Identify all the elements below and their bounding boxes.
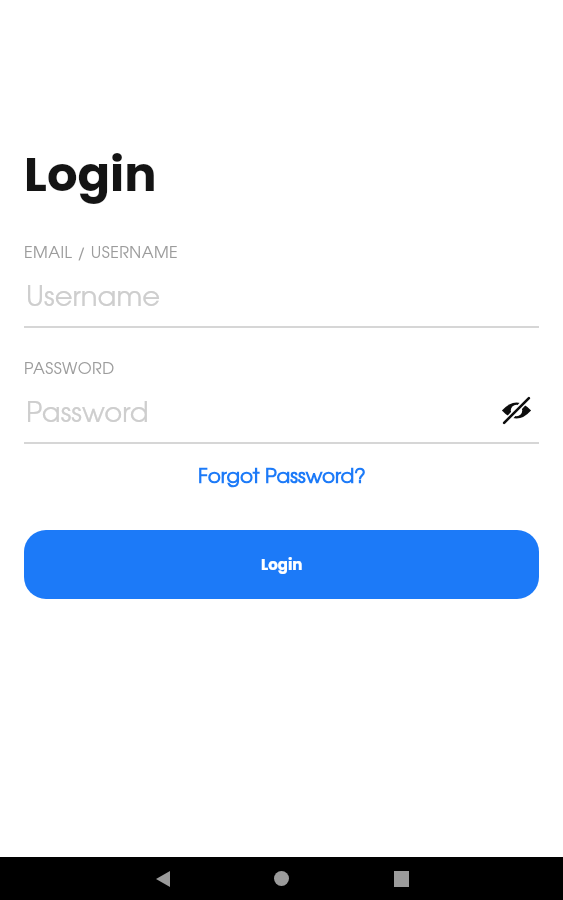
button[interactable]: Home	[260, 857, 303, 900]
button[interactable]: Login	[24, 530, 539, 599]
button[interactable]: Recent apps	[380, 857, 423, 900]
button[interactable]: Username	[24, 271, 539, 327]
button[interactable]: Forgot Password?	[190, 464, 374, 491]
button[interactable]: Back	[141, 857, 184, 900]
staticText: Login	[261, 554, 303, 575]
staticText: Password	[26, 402, 149, 428]
staticText: Username	[26, 286, 161, 312]
button[interactable]: Show password	[496, 390, 536, 430]
staticText: PASSWORD	[24, 362, 115, 377]
button[interactable]: Password	[24, 387, 539, 443]
staticText: EMAIL / USERNAME	[24, 246, 179, 261]
staticText: Login	[24, 141, 157, 208]
